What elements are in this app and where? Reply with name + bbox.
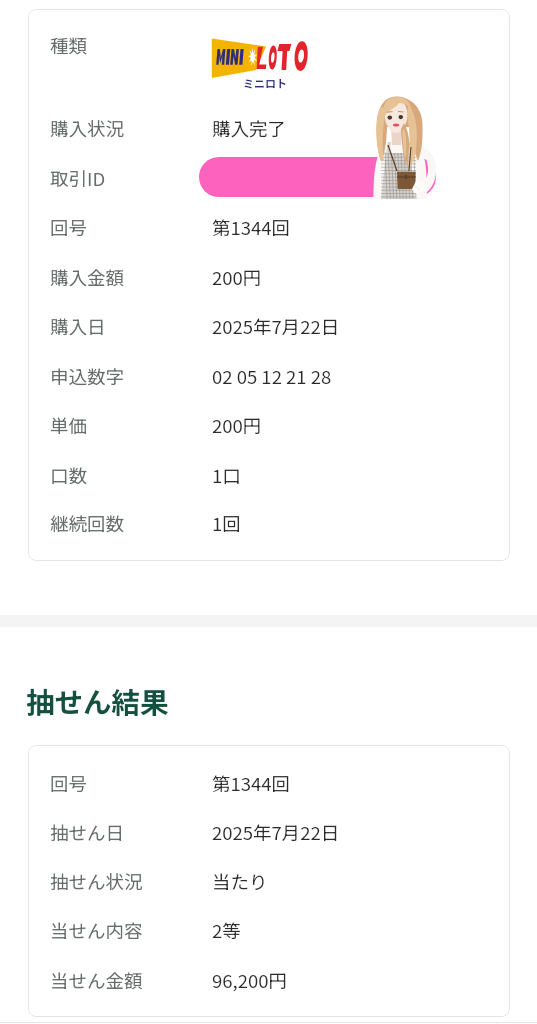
staticText: 継続回数 (50, 510, 125, 537)
button[interactable]: 申込数字 (29, 352, 509, 401)
button[interactable]: 購入金額 (29, 253, 509, 302)
staticText: 単価 (50, 412, 88, 439)
other: アバター (372, 95, 438, 199)
button[interactable]: 種類 (29, 21, 509, 70)
staticText: 当せん内容 (50, 917, 143, 944)
staticText: 購入完了 (212, 115, 287, 142)
staticText: 申込数字 (50, 363, 125, 390)
button[interactable]: 当せん内容 (29, 906, 509, 955)
other: ミニロト (208, 34, 320, 90)
button[interactable]: 当せん金額 (29, 956, 509, 1005)
staticText: 抽せん状況 (50, 868, 143, 895)
staticText: 2等 (212, 917, 241, 944)
button[interactable]: 回号 (29, 203, 509, 252)
staticText: 1回 (212, 510, 241, 537)
staticText: 口数 (50, 462, 88, 489)
staticText: 当せん金額 (50, 967, 143, 994)
staticText: 回号 (50, 214, 88, 241)
button[interactable]: 取引ID (29, 154, 509, 203)
staticText: 200円 (212, 412, 262, 439)
staticText: 96,200円 (212, 967, 287, 994)
staticText: 2025年7月22日 (212, 313, 340, 340)
staticText: 200円 (212, 264, 262, 291)
staticText: 購入日 (50, 313, 106, 340)
staticText: 種類 (50, 32, 88, 59)
staticText: ミニロト (243, 75, 287, 91)
staticText: 1口 (212, 462, 241, 489)
staticText: 第1344回 (212, 770, 291, 797)
staticText: 購入状況 (50, 115, 125, 142)
staticText: 抽せん日 (50, 819, 125, 846)
staticText: 第1344回 (212, 214, 291, 241)
staticText: 02 05 12 21 28 (212, 363, 332, 390)
button[interactable]: 単価 (29, 401, 509, 450)
staticText: 抽せん結果 (26, 680, 169, 721)
button[interactable]: 継続回数 (29, 499, 509, 548)
button[interactable]: 抽せん日 (29, 808, 509, 857)
button[interactable]: 購入日 (29, 302, 509, 351)
staticText: 当たり (212, 868, 268, 895)
button[interactable] (28, 745, 510, 1017)
button[interactable]: 抽せん状況 (29, 857, 509, 906)
staticText: 購入金額 (50, 264, 125, 291)
staticText: 取引ID (50, 165, 106, 192)
staticText: 2025年7月22日 (212, 819, 340, 846)
button[interactable]: 回号 (29, 759, 509, 808)
button[interactable] (28, 9, 510, 561)
button[interactable]: 購入状況 (29, 104, 509, 153)
button[interactable]: 口数 (29, 451, 509, 500)
staticText: 回号 (50, 770, 88, 797)
